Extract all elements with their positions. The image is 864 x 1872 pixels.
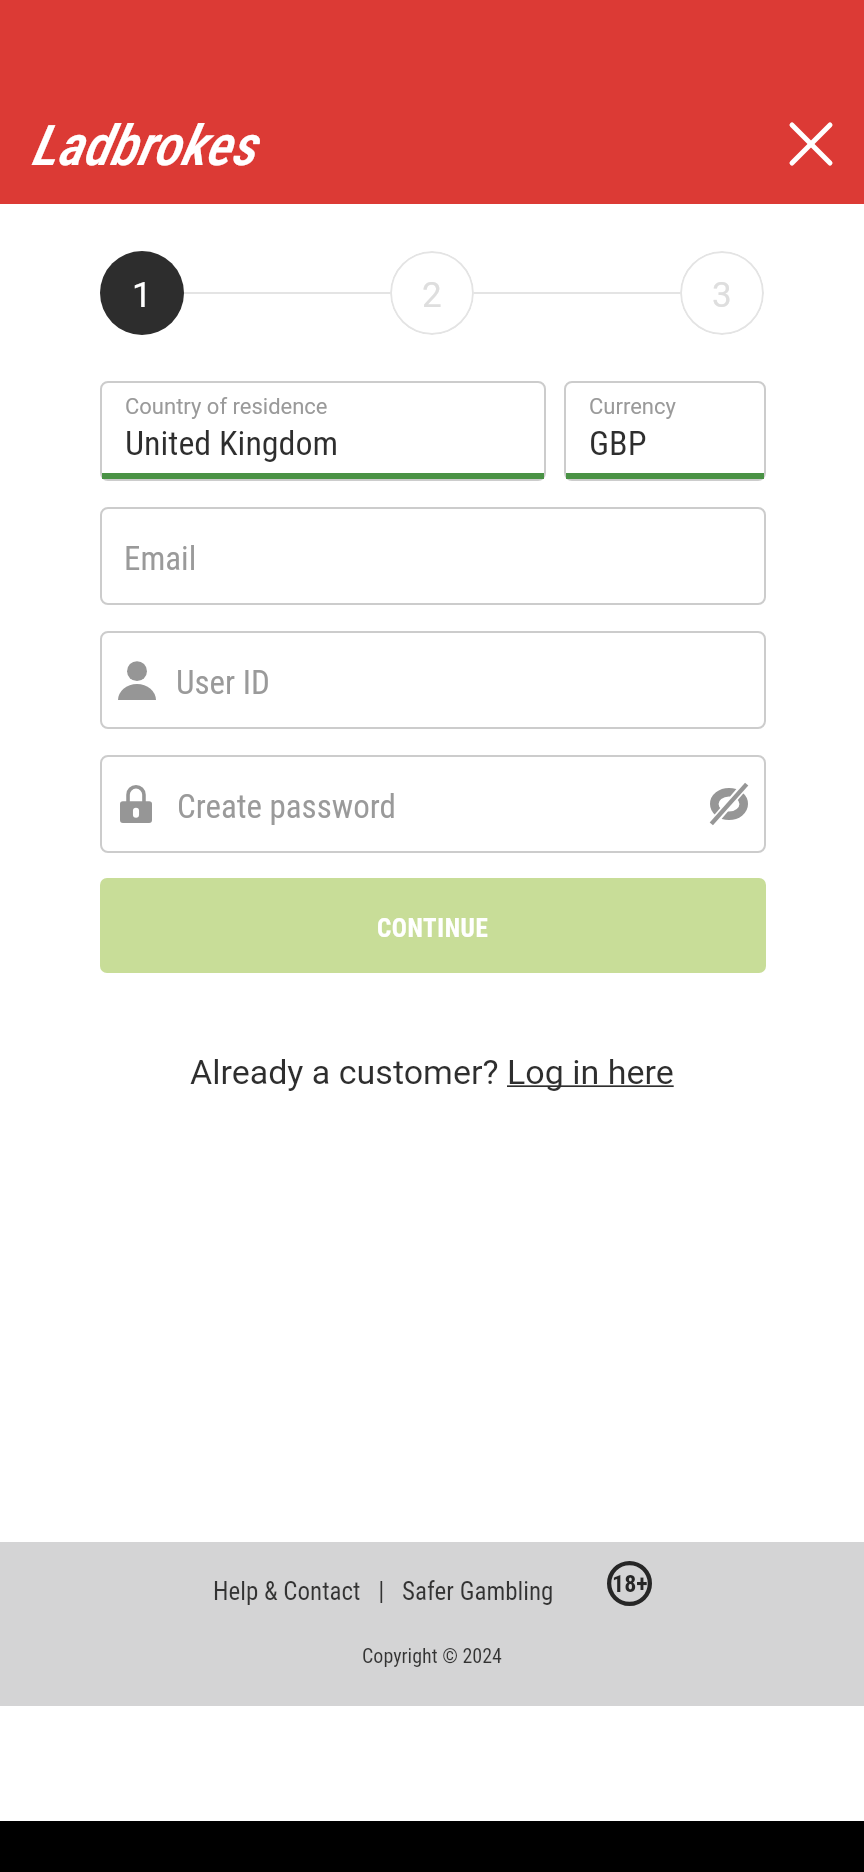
button[interactable]: Log in here <box>507 1052 674 1092</box>
staticText: Copyright © 2024 <box>362 1644 502 1667</box>
staticText: | <box>361 1577 402 1606</box>
staticText: User ID <box>176 663 270 702</box>
button[interactable]: Create password <box>100 755 766 853</box>
button[interactable]: Help & Contact <box>213 1577 361 1606</box>
button[interactable]: Show password <box>688 766 764 842</box>
staticText: CONTINUE <box>377 914 489 943</box>
button[interactable]: 3 <box>680 251 764 335</box>
button[interactable]: 1 <box>100 251 184 335</box>
staticText: Create password <box>177 787 396 826</box>
button[interactable]: CONTINUE <box>100 878 766 973</box>
staticText: Country of residence <box>125 394 328 420</box>
staticText: Ladbrokes <box>31 113 256 179</box>
staticText: GBP <box>589 423 647 463</box>
staticText: Already a customer? <box>190 1052 507 1092</box>
staticText: 18+ <box>612 1570 648 1598</box>
button[interactable]: 2 <box>390 251 474 335</box>
button[interactable]: Country of residence <box>100 381 546 481</box>
staticText: Email <box>124 539 197 578</box>
button[interactable]: Currency <box>564 381 766 481</box>
button[interactable]: Close <box>761 94 861 194</box>
staticText: 3 <box>712 275 732 316</box>
button[interactable]: Safer Gambling <box>402 1577 554 1606</box>
button[interactable]: Email <box>100 507 766 605</box>
staticText: 1 <box>132 275 152 316</box>
button[interactable]: User ID <box>100 631 766 729</box>
staticText: 2 <box>422 275 442 316</box>
staticText: Currency <box>589 394 676 420</box>
staticText: United Kingdom <box>125 423 339 463</box>
